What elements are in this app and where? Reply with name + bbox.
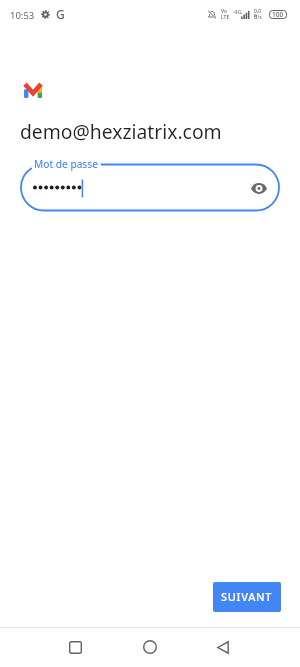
- staticText: demo@hexziatrix.com: [20, 118, 222, 144]
- staticText: LTE: [221, 14, 230, 21]
- staticText: 4G: [234, 8, 242, 16]
- button[interactable]: SUIVANT: [213, 582, 281, 612]
- staticText: Mot de passe: [34, 157, 98, 171]
- staticText: SUIVANT: [221, 589, 273, 604]
- staticText: G: [56, 6, 65, 22]
- staticText: B/s: [254, 14, 262, 21]
- button[interactable]: Home: [137, 634, 163, 660]
- staticText: 100: [272, 10, 284, 19]
- button[interactable]: Recents: [62, 634, 88, 660]
- button[interactable]: Back: [210, 634, 236, 660]
- button[interactable]: Afficher le mot de passe: [246, 175, 272, 201]
- staticText: 10:53: [10, 9, 35, 22]
- staticText: Vo: [221, 8, 228, 15]
- staticText: 0,00: [254, 8, 263, 17]
